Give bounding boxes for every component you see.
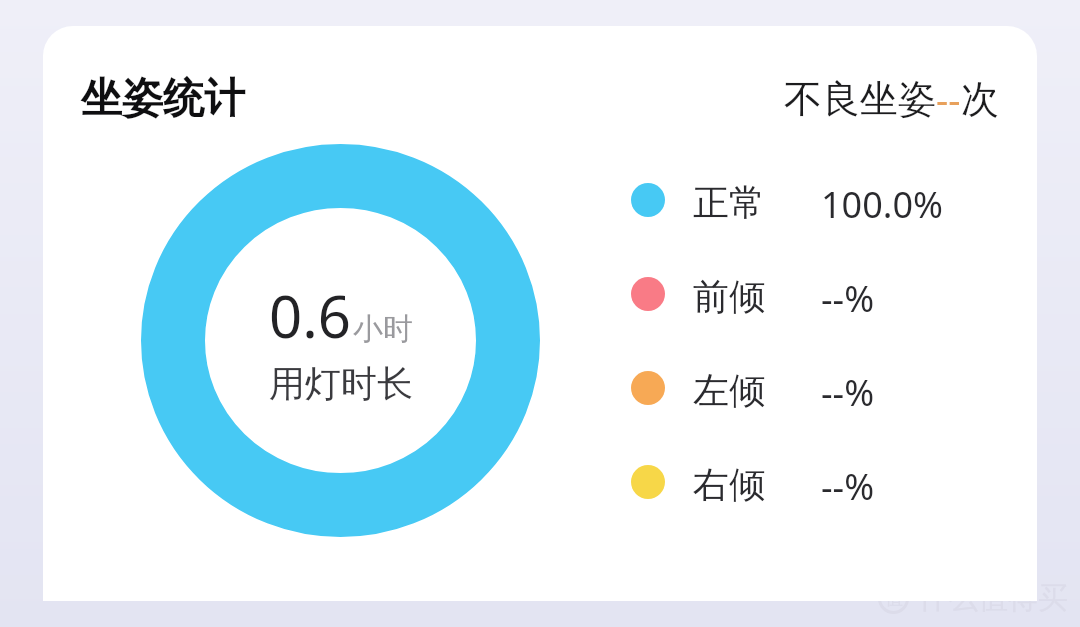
staticText: 前倾	[693, 274, 765, 314]
staticText: 左倾	[693, 368, 765, 408]
staticText: 用灯时长	[269, 361, 413, 406]
staticText: 什么值得买	[918, 579, 1068, 617]
button[interactable]: 正常 100.0%	[631, 180, 1001, 220]
staticText: 0.6	[269, 276, 351, 355]
button[interactable]: 左倾 --%	[631, 368, 1001, 408]
staticText: 100.0%	[821, 180, 943, 220]
staticText: --%	[821, 462, 875, 502]
staticText: 次	[961, 75, 999, 123]
staticText: 不良坐姿	[784, 75, 936, 123]
button[interactable]: 右倾 --%	[631, 462, 1001, 502]
staticText: --%	[821, 274, 875, 314]
staticText: --%	[821, 368, 875, 408]
staticText: 右倾	[693, 462, 765, 502]
button[interactable]: 坐姿统计	[43, 26, 1037, 601]
staticText: 值	[885, 587, 903, 610]
staticText: --	[936, 73, 961, 125]
staticText: 坐姿统计	[81, 73, 245, 125]
button[interactable]: 前倾 --%	[631, 274, 1001, 314]
staticText: 小时	[353, 310, 413, 348]
staticText: 正常	[693, 180, 765, 220]
